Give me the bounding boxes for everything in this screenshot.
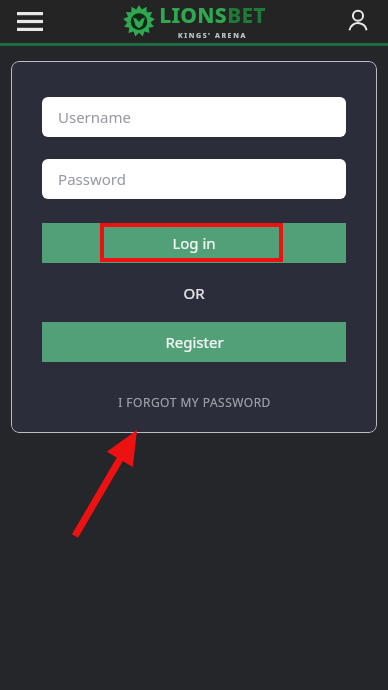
staticText: Log in [172,233,216,253]
staticText: Password [58,169,126,189]
staticText: Register [165,332,224,352]
button[interactable]: Log in [42,223,346,263]
staticText: LIONS [159,1,227,30]
staticText: I FORGOT MY PASSWORD [118,394,271,410]
staticText: OR [183,283,205,303]
button[interactable]: Password [42,159,346,199]
staticText: Username [58,107,131,127]
button[interactable]: I FORGOT MY PASSWORD [42,394,346,410]
button[interactable]: Register [42,322,346,362]
button[interactable]: Account [336,0,380,42]
staticText: BET [227,1,266,30]
button[interactable]: Username [42,97,346,137]
staticText: KINGS' ARENA [178,31,247,41]
button[interactable]: Menu [8,0,52,42]
